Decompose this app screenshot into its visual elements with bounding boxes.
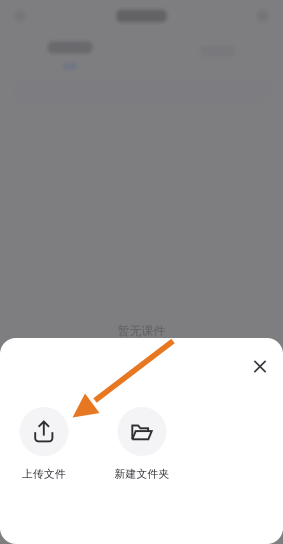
button[interactable]: Courseware tab [0,32,140,76]
staticText: 新建文件夹 [114,467,169,480]
button[interactable]: 新建文件夹 [93,407,191,481]
staticText: 暂无课件 [117,324,165,338]
button[interactable]: 上传文件 [0,407,93,481]
button[interactable]: Close [240,346,280,386]
staticText: 上传文件 [22,467,66,480]
